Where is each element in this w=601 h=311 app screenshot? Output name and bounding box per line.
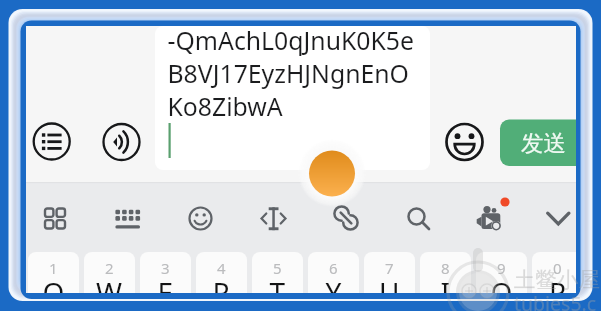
- button[interactable]: Chat input panel: [0, 0, 601, 311]
